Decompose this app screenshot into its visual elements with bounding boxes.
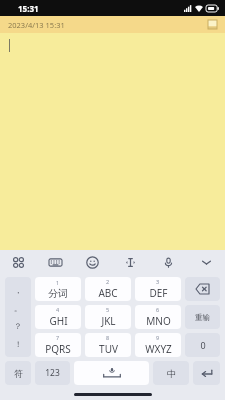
- staticText: WXYZ: [145, 342, 172, 356]
- staticText: 7: [56, 334, 60, 341]
- staticText: MNO: [146, 314, 171, 328]
- button[interactable]: 5: [85, 305, 131, 329]
- button[interactable]: Text edit: [111, 250, 149, 274]
- staticText: PQRS: [45, 342, 71, 356]
- staticText: 中: [167, 368, 176, 379]
- button[interactable]: 符: [5, 361, 31, 385]
- staticText: 符: [14, 368, 23, 379]
- button[interactable]: 123: [35, 361, 70, 385]
- button[interactable]: Keyboard layout: [37, 250, 74, 274]
- button[interactable]: 7: [35, 333, 81, 357]
- staticText: TUV: [99, 342, 118, 356]
- button[interactable]: 中: [153, 361, 189, 385]
- staticText: 分词: [48, 287, 68, 300]
- button[interactable]: 3: [135, 277, 181, 301]
- button[interactable]: Backspace: [185, 277, 220, 301]
- button[interactable]: Enter: [193, 361, 220, 385]
- button[interactable]: ，: [5, 277, 31, 357]
- staticText: 2: [106, 278, 110, 285]
- staticText: 重输: [195, 313, 210, 322]
- staticText: 15:31: [18, 3, 39, 14]
- staticText: 3: [156, 278, 160, 285]
- button[interactable]: Hide keyboard: [187, 250, 225, 274]
- staticText: 6: [156, 306, 160, 313]
- button[interactable]: 1: [35, 277, 81, 301]
- button[interactable]: 8: [85, 333, 131, 357]
- staticText: ？: [14, 321, 22, 331]
- button[interactable]: Space: [74, 361, 149, 385]
- button[interactable]: 0: [185, 333, 220, 357]
- button[interactable]: 9: [135, 333, 181, 357]
- button[interactable]: Apps: [0, 250, 37, 274]
- button[interactable]: Emoji: [74, 250, 111, 274]
- staticText: ，: [14, 285, 22, 295]
- staticText: GHI: [49, 314, 68, 328]
- button[interactable]: 6: [135, 305, 181, 329]
- staticText: 0: [200, 339, 206, 351]
- staticText: ！: [14, 339, 22, 349]
- staticText: 5: [106, 306, 110, 313]
- button[interactable]: 重输: [185, 305, 220, 329]
- staticText: 1: [56, 279, 60, 286]
- button[interactable]: Voice input: [149, 250, 187, 274]
- staticText: 123: [45, 367, 60, 379]
- button[interactable]: 2: [85, 277, 131, 301]
- button[interactable]: 4: [35, 305, 81, 329]
- staticText: JKL: [101, 314, 116, 328]
- staticText: 4: [56, 306, 60, 313]
- staticText: 9: [156, 334, 160, 341]
- staticText: ABC: [98, 286, 118, 300]
- staticText: 2023/4/13 15:31: [8, 20, 65, 30]
- staticText: DEF: [149, 286, 168, 300]
- staticText: 。: [14, 303, 22, 313]
- staticText: 8: [106, 334, 110, 341]
- button[interactable]: Note style: [207, 19, 218, 30]
